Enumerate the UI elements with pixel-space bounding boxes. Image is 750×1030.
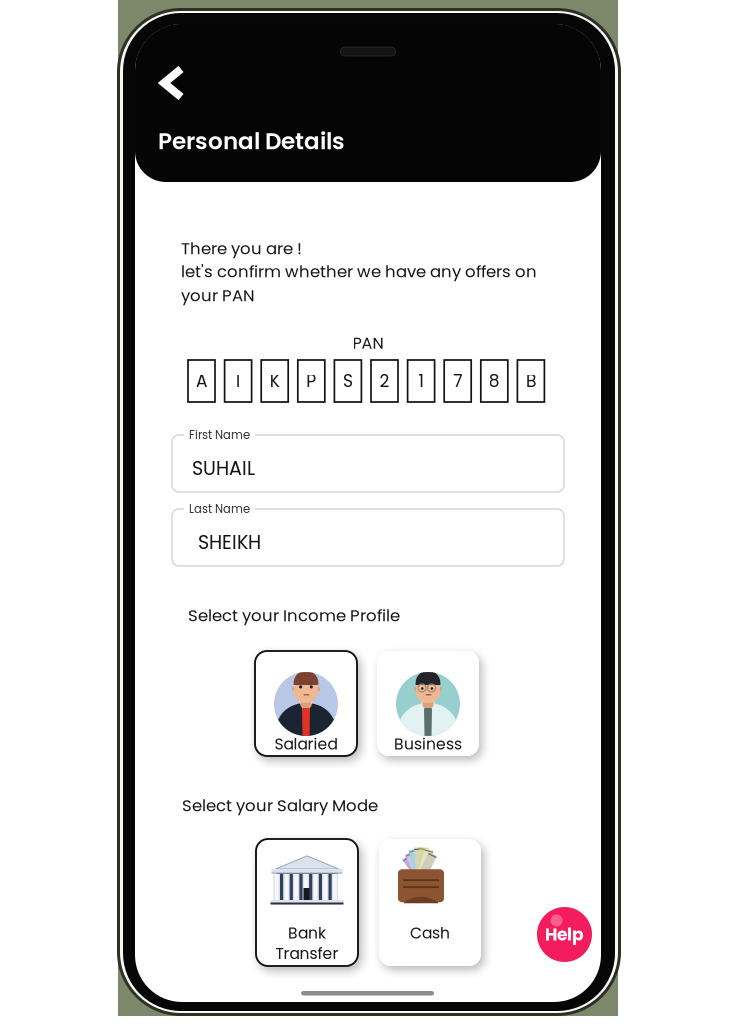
staticText: Transfer xyxy=(275,943,338,964)
button[interactable]: Bank xyxy=(256,839,358,966)
staticText: your PAN xyxy=(181,284,255,307)
staticText: 1 xyxy=(419,369,424,393)
staticText: Cash xyxy=(410,922,450,944)
staticText: B xyxy=(526,369,536,393)
staticText: Personal Details xyxy=(158,125,345,157)
staticText: SUHAIL xyxy=(192,455,255,482)
staticText: Last Name xyxy=(189,501,250,517)
staticText: 8 xyxy=(489,369,500,393)
staticText: Business xyxy=(394,733,462,755)
staticText: SHEIKH xyxy=(198,529,261,556)
button[interactable]: Business xyxy=(377,651,479,756)
staticText: Bank xyxy=(288,922,326,944)
staticText: Select your Income Profile xyxy=(188,604,400,627)
staticText: There you are ! xyxy=(181,237,302,260)
staticText: Help xyxy=(545,923,584,946)
staticText: I xyxy=(236,369,240,393)
staticText: 7 xyxy=(453,369,462,393)
staticText: Select your Salary Mode xyxy=(182,794,378,817)
staticText: Salaried xyxy=(274,733,337,755)
button[interactable]: Salaried xyxy=(255,651,357,756)
staticText: First Name xyxy=(189,427,250,443)
staticText: PAN xyxy=(352,332,383,354)
button[interactable]: Help xyxy=(537,907,592,962)
staticText: S xyxy=(343,369,353,393)
staticText: K xyxy=(270,369,280,393)
staticText: P xyxy=(306,369,316,393)
staticText: A xyxy=(196,369,207,393)
staticText: let's confirm whether we have any offers… xyxy=(181,260,537,283)
staticText: 2 xyxy=(379,369,389,393)
button[interactable]: Cash xyxy=(379,839,481,966)
button[interactable]: Back xyxy=(158,64,188,102)
